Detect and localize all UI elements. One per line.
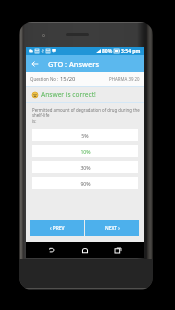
staticText: 15/20 — [60, 75, 76, 83]
staticText: ‹ PREV — [50, 225, 65, 232]
staticText: 10% — [80, 148, 91, 155]
button[interactable]: ‹ PREV — [30, 220, 84, 236]
staticText: 90% — [80, 180, 91, 187]
staticText: 80% — [102, 48, 113, 55]
staticText: 30% — [80, 164, 91, 171]
button[interactable]: Back — [26, 55, 43, 72]
button[interactable]: 90% — [32, 177, 138, 189]
staticText: PHARMA 39 20 — [109, 76, 140, 82]
button[interactable]: 10% — [32, 145, 138, 157]
button[interactable]: Recents — [111, 243, 125, 257]
button[interactable]: Home — [78, 243, 92, 257]
button[interactable]: 5% — [32, 129, 138, 141]
button[interactable]: NEXT › — [85, 220, 139, 236]
staticText: Permitted amount of degradation of drug … — [32, 107, 140, 125]
staticText: 3:54 pm — [121, 48, 141, 55]
staticText: GTO : Answers — [48, 59, 100, 69]
staticText: Question No : — [30, 76, 60, 82]
button[interactable]: 30% — [32, 161, 138, 173]
staticText: 5% — [81, 132, 89, 139]
button[interactable]: Back — [45, 243, 59, 257]
staticText: NEXT › — [105, 225, 120, 232]
staticText: Answer is correct! — [41, 90, 96, 99]
